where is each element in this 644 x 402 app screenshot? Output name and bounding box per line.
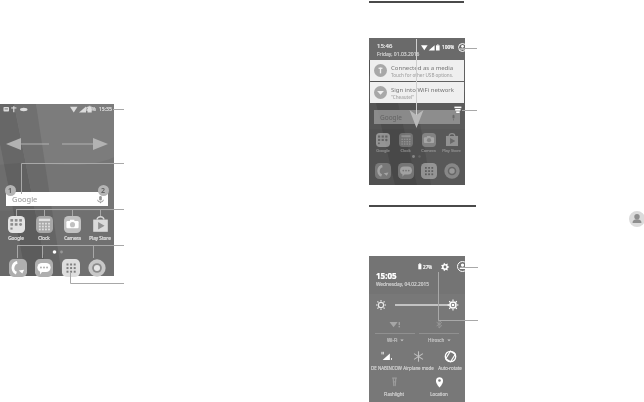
button[interactable]: Hirosch [417,318,461,350]
staticText: Wednesday, 04.02.2015 [376,281,429,288]
staticText: 2 [101,186,106,196]
button[interactable]: Account [458,43,467,52]
button[interactable]: Phone [8,258,27,277]
staticText: 15:46 [377,42,393,50]
staticText: Clock [38,235,50,241]
button[interactable]: Camera [58,216,86,242]
button[interactable]: All apps [61,258,80,277]
staticText: 1 [8,186,13,196]
staticText: 15:05 [376,270,397,281]
button[interactable]: DE NABINCOW [370,350,402,378]
button[interactable]: Google [6,192,108,206]
staticText: 15:35 [99,106,112,113]
staticText: Friday, 01.03.2016 [377,51,420,58]
staticText: DE NABINCOW [371,365,402,371]
button[interactable]: Messages [397,162,414,179]
staticText: Google [12,194,38,204]
button[interactable]: Connected as a media device [370,60,464,81]
button[interactable]: Phone [374,162,391,179]
staticText: Flashlight [384,391,404,397]
staticText: Camera [421,148,436,153]
button[interactable]: Auto-rotate [434,350,466,378]
button[interactable]: Play Store [86,216,114,242]
button[interactable]: Clear all notifications [454,106,462,114]
button[interactable]: Clock [30,216,58,242]
button[interactable]: Account [457,261,468,272]
staticText: 100% [442,44,455,51]
button[interactable]: Wi-Fi [373,318,417,350]
button[interactable]: Clock [394,133,417,155]
staticText: Auto-rotate [438,365,462,371]
button[interactable]: Airplane mode [402,350,434,378]
staticText: Play Store [89,235,111,241]
button[interactable]: Account [629,211,644,227]
button[interactable]: All apps [420,162,437,179]
staticText: "Cheautel" [391,94,414,100]
staticText: Touch for other USB options. [391,72,454,78]
button[interactable]: Chrome [443,162,460,179]
button[interactable]: Chrome [87,258,106,277]
button[interactable]: Flashlight [376,376,412,402]
staticText: Clock [400,148,411,153]
staticText: Airplane mode [403,365,434,371]
staticText: Location [430,391,448,397]
staticText: 27% [423,264,433,270]
staticText: Connected as a media device [391,64,464,72]
staticText: Google [376,148,390,153]
button[interactable]: Google [2,216,30,242]
button[interactable]: Settings [440,262,450,272]
button[interactable]: Play Store [440,133,463,155]
staticText: Play Store [442,148,461,153]
button[interactable]: Brightness [447,299,459,311]
button[interactable]: Location [421,376,457,402]
staticText: Sign into WiFi network [391,86,455,94]
staticText: Wi-Fi [387,337,398,343]
staticText: Google [8,235,24,241]
staticText: Hirosch [428,337,445,343]
button[interactable]: Google [371,133,394,155]
button[interactable]: Camera [417,133,440,155]
button[interactable]: Messages [34,258,53,277]
button[interactable]: Sign into WiFi network [370,82,464,103]
staticText: Camera [64,235,81,241]
staticText: Google [380,113,402,122]
staticText: 96% [86,106,96,113]
